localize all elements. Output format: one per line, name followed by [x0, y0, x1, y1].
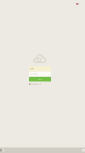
staticText: Password	[30, 73, 38, 75]
staticText: Email	[30, 68, 33, 70]
button[interactable]: Scroll right	[82, 149, 85, 151]
staticText: Sign In	[38, 78, 42, 80]
button[interactable]: Status	[76, 3, 79, 5]
button[interactable]: Sign In	[29, 77, 51, 81]
button[interactable]: Remember me	[29, 83, 51, 86]
staticText: Remember me	[31, 83, 41, 85]
